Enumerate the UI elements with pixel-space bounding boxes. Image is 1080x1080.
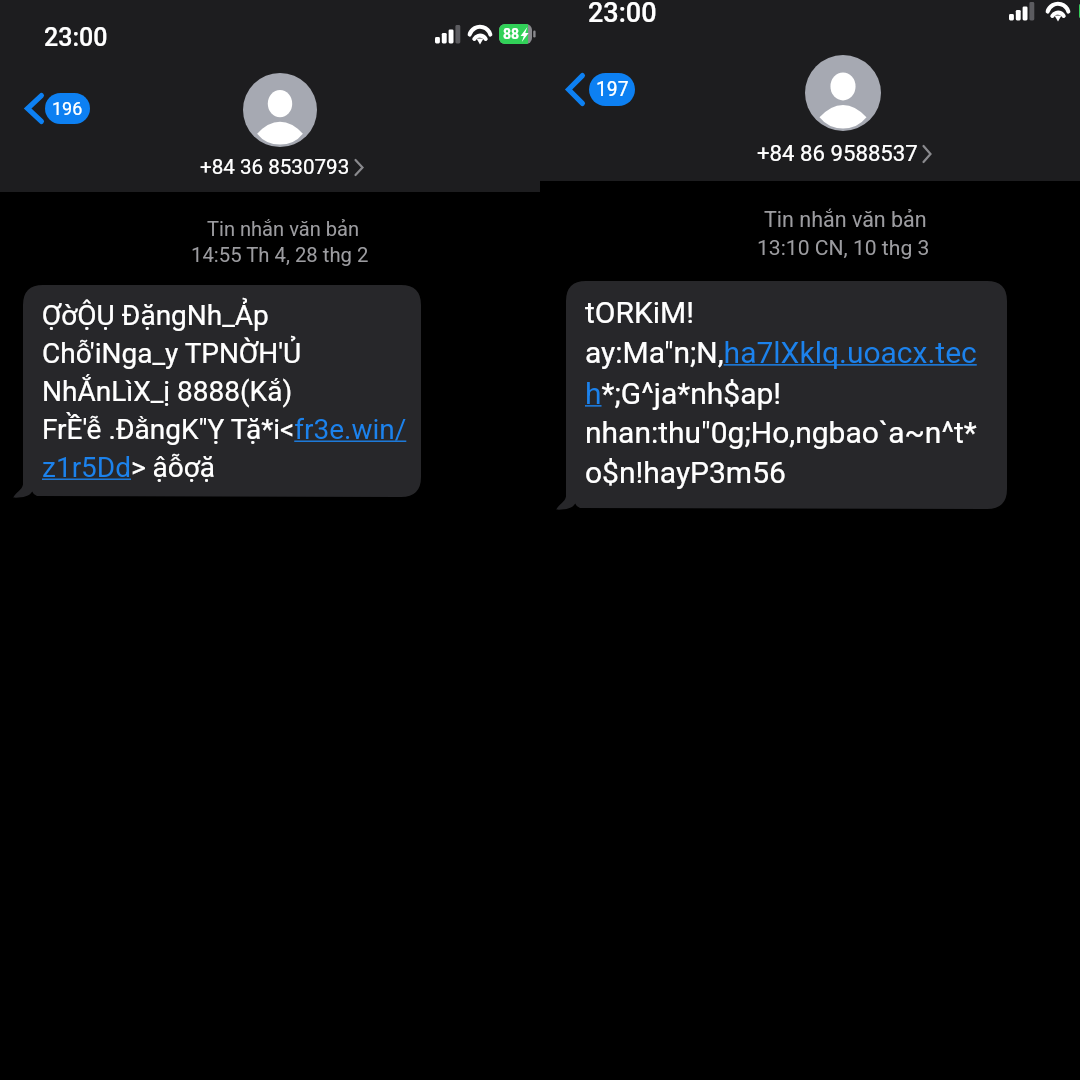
button[interactable]: Back <box>566 73 585 106</box>
staticText: ỢờỘỤ ĐặngNh_Ảp <box>42 299 269 332</box>
staticText: 23:00 <box>44 23 108 52</box>
button[interactable]: Contact photo <box>243 73 317 147</box>
staticText: FrỀ'ễ .ĐằngK"Ỵ Tặ*i<fr3e.win/ <box>42 413 407 446</box>
button[interactable]: Contact photo <box>805 55 881 131</box>
button[interactable]: +84 86 9588537 <box>757 140 932 166</box>
staticText: NhẮnLìX_ị 8888(Kắ) <box>42 375 293 408</box>
staticText: nhan:thu"0g;Ho,ngbao`a~n^t* <box>585 415 977 450</box>
button[interactable]: +84 36 8530793 <box>200 155 364 179</box>
staticText: 197 <box>596 78 629 101</box>
staticText: 88 <box>503 26 520 42</box>
staticText: Chỗ'iNga_y TPNỜH'Ủ <box>42 337 302 370</box>
staticText: Tin nhắn văn bản <box>764 207 927 232</box>
button[interactable]: 197 <box>589 73 635 106</box>
button[interactable]: Message bubble <box>554 281 1007 515</box>
staticText: +84 86 9588537 <box>757 140 918 166</box>
staticText: Tin nhắn văn bản <box>207 217 360 241</box>
staticText: 14:55 Th 4, 28 thg 2 <box>191 243 369 267</box>
staticText: 13:10 CN, 10 thg 3 <box>757 235 930 260</box>
staticText: tORKiM! <box>585 295 694 330</box>
staticText: +84 36 8530793 <box>200 155 350 179</box>
staticText: z1r5Dd> ậỗợặ <box>42 451 216 484</box>
button[interactable]: 196 <box>45 93 90 124</box>
staticText: ay:Ma"n;N,ha7lXklq.uoacx.tec <box>585 335 977 370</box>
staticText: 196 <box>52 98 83 119</box>
staticText: 23:00 <box>588 0 657 29</box>
staticText: h*;G^ja*nh$ap! <box>585 376 782 411</box>
button[interactable]: Message bubble <box>11 285 421 503</box>
button[interactable]: Back <box>25 93 44 124</box>
staticText: o$n!hayP3m56 <box>585 455 786 490</box>
